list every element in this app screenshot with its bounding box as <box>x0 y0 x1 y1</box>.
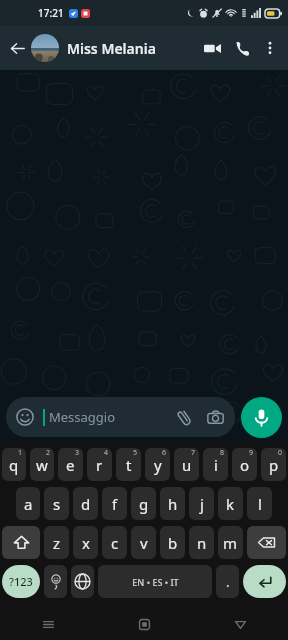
staticText: ?123 <box>9 574 33 589</box>
button[interactable]: Contact photo <box>31 34 59 62</box>
button[interactable]: e <box>58 448 83 481</box>
button[interactable]: f <box>102 487 127 520</box>
button[interactable]: t <box>116 448 141 481</box>
button[interactable]: u <box>174 448 199 481</box>
staticText: 1 <box>18 448 23 458</box>
staticText: 0 <box>278 448 283 458</box>
button[interactable]: . <box>216 565 239 598</box>
button[interactable]: Record voice message <box>241 397 282 438</box>
staticText: 2 <box>46 448 51 458</box>
staticText: b <box>168 533 178 553</box>
staticText: 4 <box>104 448 109 458</box>
staticText: n <box>197 533 207 553</box>
staticText: o <box>240 455 250 475</box>
button[interactable]: More options <box>257 35 283 61</box>
button[interactable]: Emoji <box>15 407 35 427</box>
staticText: s <box>53 494 61 514</box>
staticText: w <box>36 455 48 475</box>
staticText: h <box>168 494 178 514</box>
staticText: i <box>214 455 218 475</box>
button[interactable]: EN • ES • IT <box>98 565 212 598</box>
button[interactable]: x <box>73 526 98 559</box>
button[interactable]: m <box>218 526 243 559</box>
button[interactable]: w <box>30 448 54 481</box>
staticText: 7 <box>191 448 196 458</box>
staticText: u <box>182 455 192 475</box>
staticText: p <box>269 455 279 475</box>
button[interactable]: o <box>232 448 257 481</box>
button[interactable]: q <box>2 448 26 481</box>
staticText: q <box>9 455 19 475</box>
button[interactable]: c <box>102 526 127 559</box>
button[interactable]: Attach <box>173 406 195 428</box>
button[interactable]: Emoji and comma <box>44 565 67 598</box>
staticText: y <box>154 455 162 475</box>
staticText: EN • ES • IT <box>132 576 179 588</box>
button[interactable]: Emoji <box>6 397 235 437</box>
button[interactable]: h <box>160 487 185 520</box>
button[interactable]: Recents <box>0 609 96 640</box>
button[interactable]: n <box>189 526 214 559</box>
button[interactable]: i <box>203 448 228 481</box>
button[interactable]: a <box>16 487 40 520</box>
staticText: 6 <box>162 448 167 458</box>
button[interactable]: z <box>44 526 69 559</box>
button[interactable]: Back <box>5 36 29 60</box>
button[interactable]: l <box>247 487 272 520</box>
staticText: x <box>82 533 90 553</box>
staticText: l <box>258 494 262 514</box>
staticText: 3 <box>75 448 80 458</box>
staticText: g <box>139 494 149 514</box>
staticText: t <box>126 455 132 475</box>
button[interactable]: Camera <box>204 406 226 428</box>
button[interactable]: p <box>261 448 286 481</box>
button[interactable]: k <box>218 487 243 520</box>
button[interactable]: y <box>145 448 170 481</box>
button[interactable]: Back <box>192 609 288 640</box>
staticText: 17:21 <box>38 6 64 20</box>
staticText: a <box>24 494 33 514</box>
button[interactable]: Shift <box>2 526 40 559</box>
staticText: e <box>66 455 75 475</box>
staticText: c <box>111 533 119 553</box>
button[interactable]: b <box>160 526 185 559</box>
staticText: r <box>96 455 103 475</box>
button[interactable]: d <box>73 487 98 520</box>
button[interactable]: s <box>44 487 69 520</box>
button[interactable]: Change keyboard language <box>71 565 94 598</box>
button[interactable]: ?123 <box>2 565 40 598</box>
staticText: 8 <box>220 448 225 458</box>
button[interactable]: j <box>189 487 214 520</box>
button[interactable]: Enter <box>243 565 286 598</box>
staticText: m <box>223 533 238 553</box>
button[interactable]: g <box>131 487 156 520</box>
staticText: . <box>226 573 230 591</box>
staticText: v <box>140 533 148 553</box>
button[interactable]: Video call <box>197 33 227 63</box>
button[interactable]: Backspace <box>247 526 286 559</box>
staticText: Miss Melania <box>67 39 156 58</box>
staticText: 5 <box>133 448 138 458</box>
button[interactable]: v <box>131 526 156 559</box>
button[interactable]: Voice call <box>227 33 257 63</box>
staticText: 9 <box>249 448 254 458</box>
staticText: z <box>53 533 61 553</box>
staticText: f <box>112 494 118 514</box>
staticText: j <box>200 494 204 514</box>
button[interactable]: r <box>87 448 112 481</box>
button[interactable]: Home <box>96 609 192 640</box>
button[interactable]: Miss Melania <box>67 39 197 58</box>
staticText: k <box>226 494 235 514</box>
staticText: Messaggio <box>49 408 116 426</box>
staticText: d <box>81 494 91 514</box>
